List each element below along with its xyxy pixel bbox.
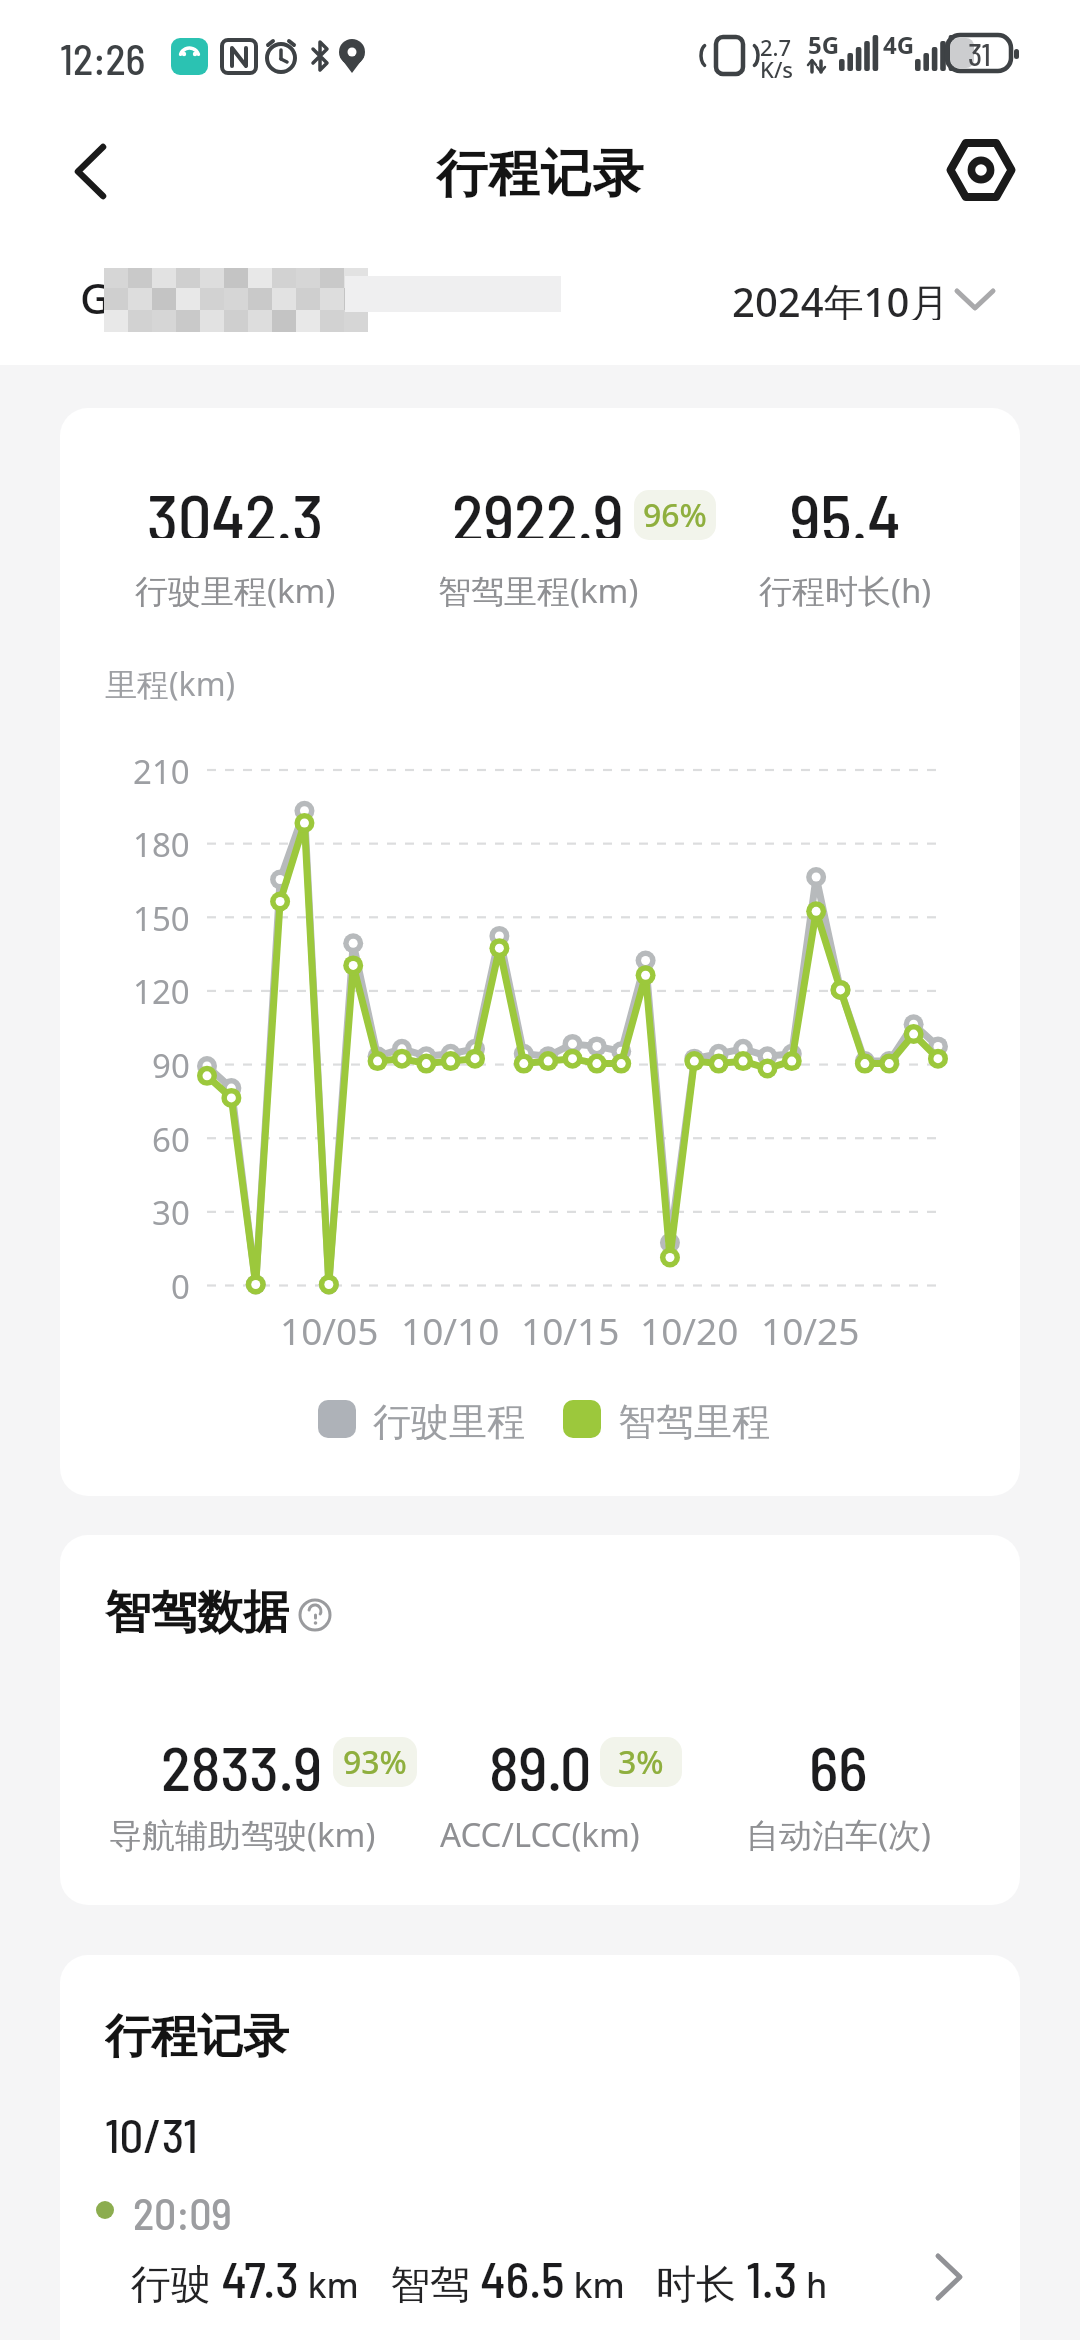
- button[interactable]: [50, 130, 140, 220]
- staticText: G6: [80, 269, 135, 319]
- button[interactable]: [290, 1590, 340, 1640]
- staticText: 行驶里程(km): [135, 568, 336, 610]
- staticText: 智驾数据: [105, 1584, 289, 1640]
- staticText: 10/05: [280, 1305, 379, 1349]
- staticText: 30: [152, 1190, 190, 1232]
- staticText: 行程时长(h): [759, 568, 932, 610]
- staticText: 10/31: [105, 2106, 198, 2156]
- staticText: 66: [809, 1729, 868, 1791]
- button[interactable]: [930, 120, 1030, 220]
- staticText: 2.7: [760, 32, 792, 58]
- staticText: 2024年10月: [732, 274, 950, 320]
- staticText: 60: [152, 1117, 190, 1159]
- staticText: 150: [133, 896, 190, 938]
- staticText: 行驶里程: [373, 1398, 525, 1440]
- staticText: ACC/LCC(km): [440, 1812, 640, 1854]
- staticText: 180: [133, 822, 190, 864]
- staticText: 10/10: [401, 1305, 500, 1349]
- staticText: 20:09: [133, 2186, 232, 2236]
- staticText: 2833.9: [161, 1729, 323, 1791]
- staticText: 95.4: [790, 476, 901, 538]
- button[interactable]: [80, 2240, 980, 2320]
- staticText: 5G: [808, 28, 840, 58]
- staticText: 93%: [343, 1740, 407, 1784]
- staticText: 4G: [883, 28, 915, 58]
- staticText: 里程(km): [105, 662, 236, 702]
- staticText: 31: [968, 36, 991, 72]
- staticText: 自动泊车(次): [746, 1812, 931, 1854]
- staticText: 行驶 47.3 km 智驾 46.5 km 时长 1.3 h: [131, 2248, 828, 2306]
- staticText: 行程记录: [436, 142, 644, 198]
- staticText: 210: [133, 749, 190, 791]
- staticText: 智驾里程: [618, 1398, 770, 1440]
- staticText: 3042.3: [147, 476, 324, 538]
- staticText: 10/25: [761, 1305, 860, 1349]
- staticText: 2922.9: [452, 476, 624, 538]
- staticText: 0: [171, 1264, 190, 1306]
- staticText: 导航辅助驾驶(km): [109, 1812, 376, 1854]
- staticText: 智驾里程(km): [438, 568, 639, 610]
- staticText: 90: [152, 1043, 190, 1085]
- staticText: 行程记录: [105, 2008, 289, 2064]
- staticText: 3%: [618, 1740, 664, 1784]
- staticText: K/s: [760, 54, 794, 80]
- staticText: 89.0: [489, 1729, 592, 1791]
- staticText: 10/20: [640, 1305, 739, 1349]
- staticText: 12:26: [60, 33, 146, 77]
- staticText: 96%: [643, 493, 707, 537]
- button[interactable]: [700, 265, 1010, 325]
- staticText: 10/15: [521, 1305, 620, 1349]
- staticText: 120: [133, 969, 190, 1011]
